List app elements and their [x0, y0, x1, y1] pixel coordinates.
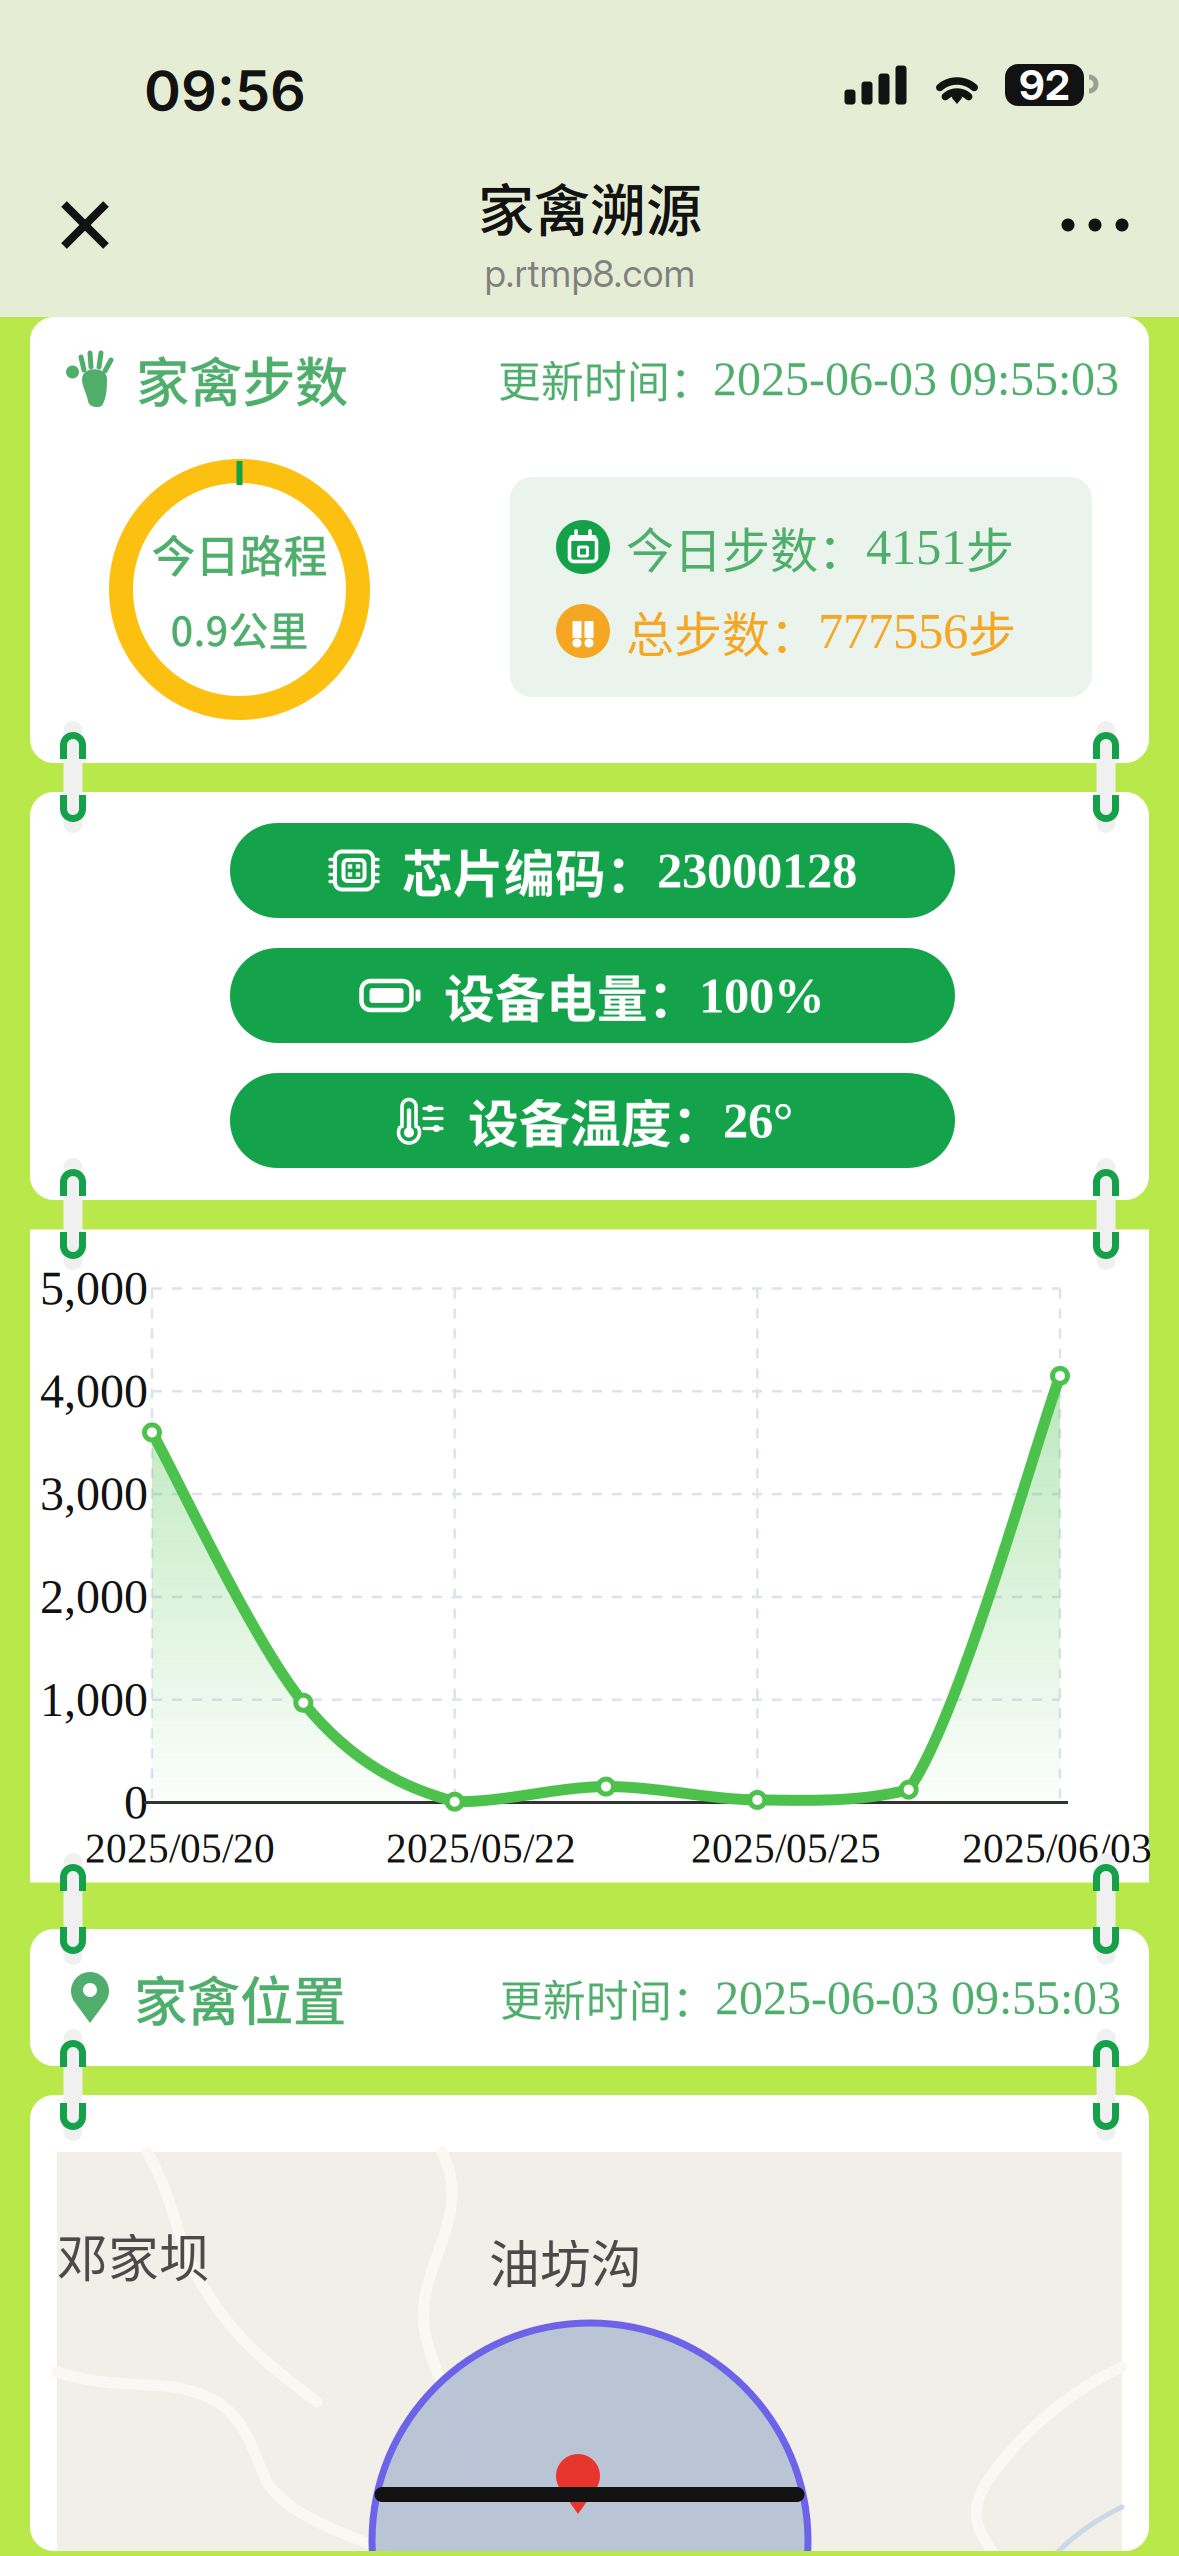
button[interactable]: 芯片编码： [230, 823, 955, 918]
staticText: 家禽位置 [134, 1959, 346, 2037]
staticText: 油坊沟 [489, 2224, 642, 2298]
staticText: 设备温度： [468, 1084, 723, 1157]
staticText: 更新时间： [500, 1967, 715, 2029]
staticText: 总步数： [626, 596, 818, 666]
staticText: 4151 [866, 519, 966, 575]
staticText: p.rtmp8.com [484, 251, 695, 296]
staticText: 2025-06-03 09:55:03 [715, 1971, 1121, 2025]
staticText: 2025/06/03 [962, 1826, 1152, 1871]
staticText: 100% [699, 967, 825, 1023]
staticText: 23000128 [657, 842, 857, 898]
staticText: 更新时间： [498, 348, 713, 410]
staticText: 777556 [818, 603, 968, 659]
staticText: 26° [723, 1092, 793, 1148]
staticText: 2025-06-03 09:55:03 [713, 352, 1119, 406]
staticText: 1,000 [40, 1673, 148, 1726]
staticText: 09:56 [144, 57, 306, 125]
staticText: 芯片编码： [402, 834, 657, 907]
staticText: 邓家坝 [57, 2218, 210, 2292]
staticText: 2025/05/25 [691, 1826, 881, 1871]
staticText: 步 [968, 596, 1016, 666]
staticText: 家禽步数 [136, 340, 348, 418]
staticText: 2,000 [40, 1570, 148, 1623]
button[interactable]: 设备温度： [230, 1073, 955, 1168]
staticText: 设备电量： [444, 959, 699, 1032]
staticText: 2025/05/22 [386, 1826, 576, 1871]
button[interactable]: 设备电量： [230, 948, 955, 1043]
staticText: 92 [1019, 60, 1070, 110]
staticText: 今日路程 [151, 522, 327, 585]
staticText: 0.9公里 [170, 599, 308, 657]
staticText: 3,000 [40, 1467, 148, 1521]
staticText: 步 [966, 512, 1014, 582]
staticText: 家禽溯源 [478, 166, 702, 247]
staticText: 4,000 [40, 1365, 148, 1418]
button[interactable]: Close [36, 176, 134, 274]
staticText: 今日步数： [626, 512, 866, 582]
button[interactable]: More options [1046, 176, 1144, 274]
staticText: 5,000 [40, 1262, 148, 1315]
staticText: 2025/05/20 [85, 1826, 275, 1871]
staticText: 0 [124, 1776, 148, 1829]
